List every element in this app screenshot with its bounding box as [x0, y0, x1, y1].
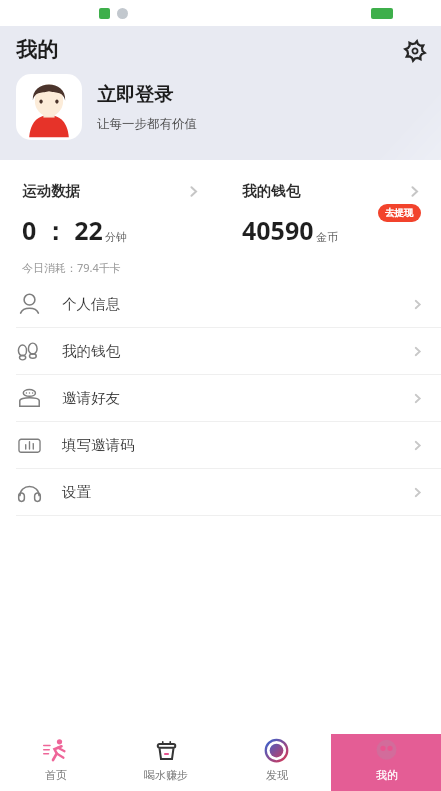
staticText: 发现	[266, 768, 288, 782]
staticText: 我的钱包	[242, 182, 300, 200]
button[interactable]: 立即登录	[16, 74, 197, 140]
button[interactable]: Settings	[402, 38, 428, 64]
staticText: 个人信息	[62, 295, 120, 313]
staticText: 我的钱包	[62, 342, 120, 360]
button[interactable]: 去提现	[378, 204, 421, 222]
staticText: 立即登录	[97, 83, 173, 107]
button[interactable]: 个人信息	[0, 281, 441, 327]
button[interactable]: 我的钱包	[220, 160, 441, 281]
staticText: 我的	[376, 768, 398, 782]
staticText: 运动数据	[22, 182, 80, 200]
staticText: 首页	[45, 768, 67, 782]
staticText: 分钟	[105, 230, 127, 244]
staticText: 今日消耗：79.4千卡	[22, 260, 121, 275]
staticText: 邀请好友	[62, 389, 120, 407]
staticText: 让每一步都有价值	[97, 116, 197, 132]
button[interactable]: 设置	[0, 469, 441, 515]
staticText: 金币	[316, 230, 338, 244]
button[interactable]: 填写邀请码	[0, 422, 441, 468]
staticText: 设置	[62, 483, 91, 501]
staticText: 去提现	[385, 207, 414, 219]
button[interactable]: 运动数据	[0, 160, 220, 281]
button[interactable]: 喝水赚步	[111, 720, 221, 791]
staticText: 填写邀请码	[62, 436, 135, 454]
button[interactable]: 发现	[221, 720, 331, 791]
button[interactable]: 我的钱包	[0, 328, 441, 374]
button[interactable]: 邀请好友	[0, 375, 441, 421]
staticText: 0 ： 22	[22, 213, 103, 247]
staticText: 我的	[16, 37, 58, 63]
staticText: 喝水赚步	[144, 768, 188, 782]
button[interactable]: 我的	[331, 720, 441, 791]
button[interactable]: 首页	[0, 720, 111, 791]
staticText: 40590	[242, 213, 314, 247]
